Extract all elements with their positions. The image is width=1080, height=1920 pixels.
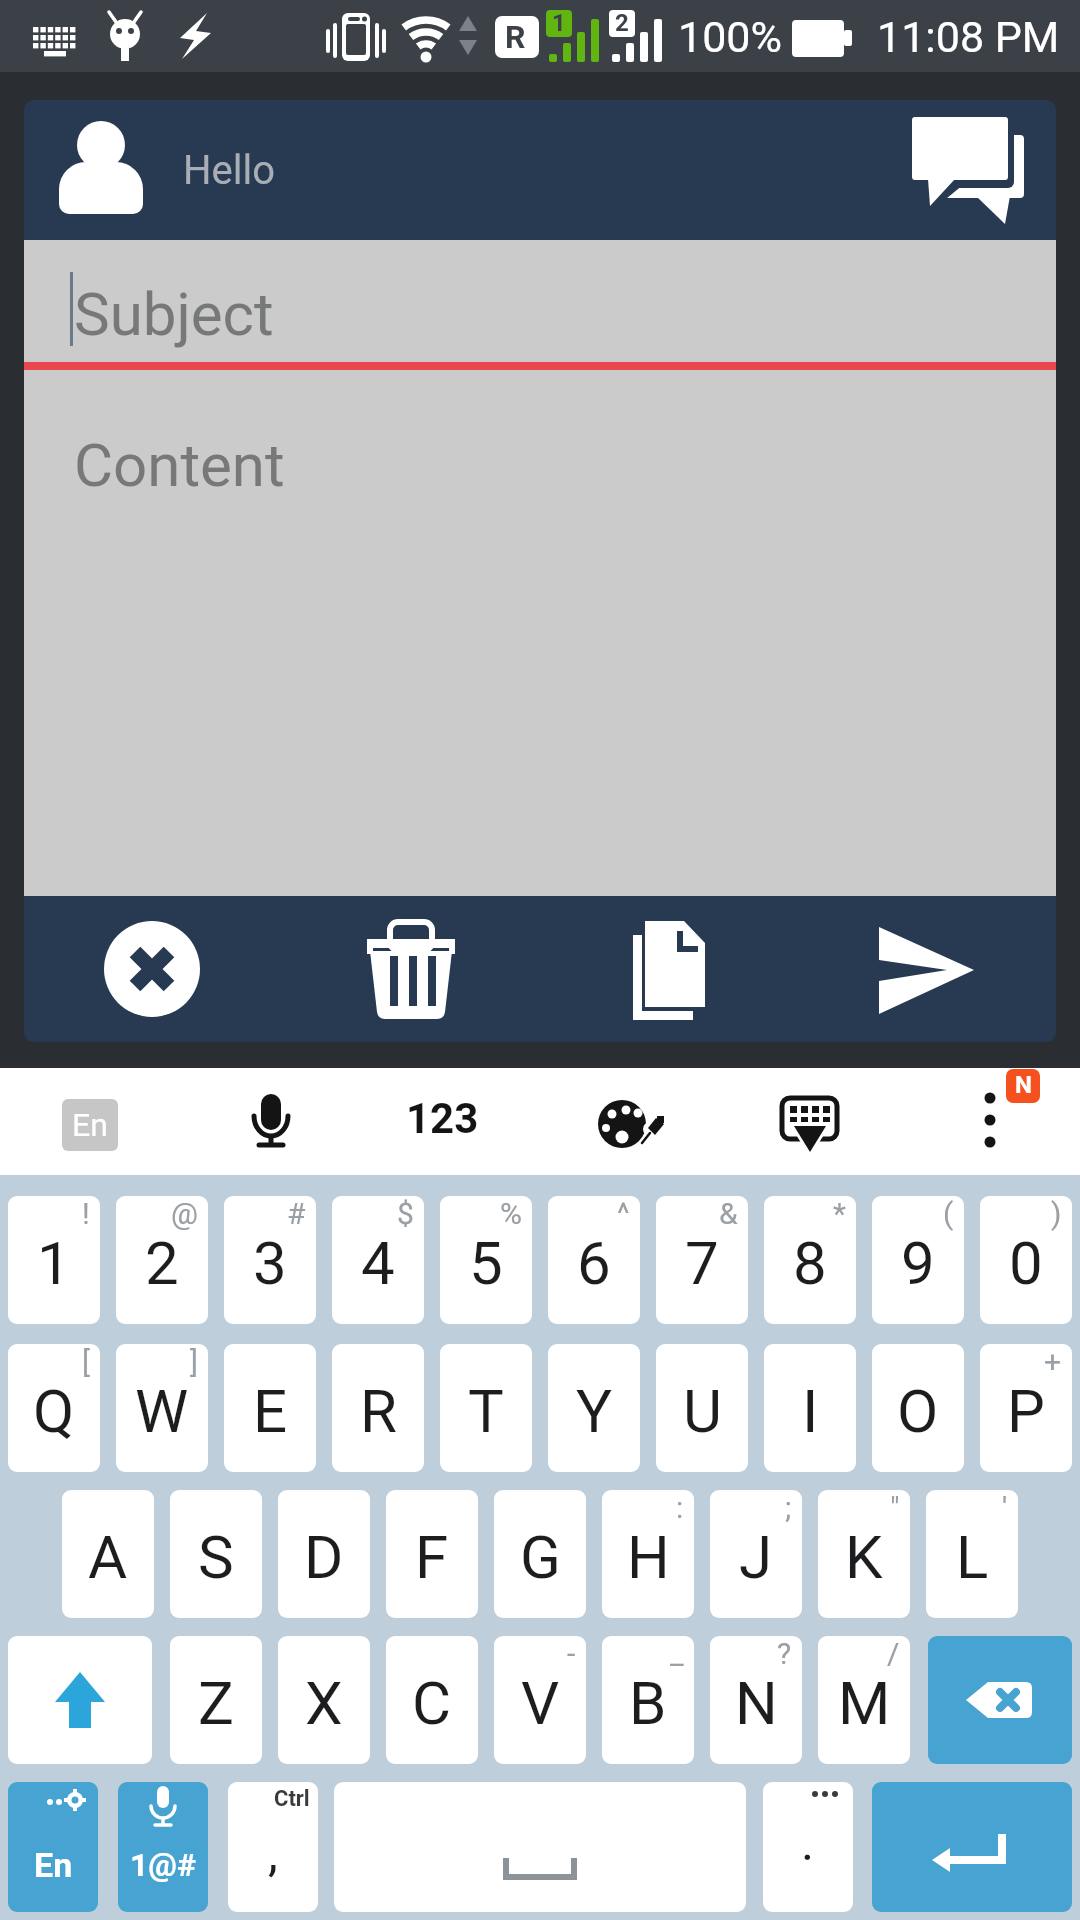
staticText: : [676, 1490, 684, 1525]
button[interactable] [598, 899, 738, 1039]
staticText: D [304, 1522, 344, 1592]
button[interactable] [928, 1636, 1072, 1764]
staticText: ^ [617, 1196, 630, 1231]
button[interactable] [855, 899, 995, 1039]
staticText: Q [33, 1376, 75, 1446]
button[interactable] [44, 110, 164, 230]
button[interactable]: L [926, 1490, 1018, 1618]
button[interactable] [892, 100, 1052, 240]
button[interactable]: X [278, 1636, 370, 1764]
staticText: O [897, 1376, 939, 1446]
button[interactable]: E [224, 1344, 316, 1472]
staticText: Subject [74, 279, 274, 349]
button[interactable] [950, 1078, 1040, 1168]
button[interactable] [341, 899, 481, 1039]
button[interactable]: 5 [440, 1196, 532, 1324]
staticText: ] [190, 1344, 198, 1379]
button[interactable] [82, 899, 222, 1039]
button[interactable]: D [278, 1490, 370, 1618]
button[interactable]: J [710, 1490, 802, 1618]
button[interactable] [768, 1078, 888, 1168]
staticText: X [305, 1668, 343, 1738]
button[interactable]: G [494, 1490, 586, 1618]
button[interactable]: Content [24, 370, 1056, 896]
button[interactable]: C [386, 1636, 478, 1764]
button[interactable]: I [764, 1344, 856, 1472]
staticText: 1 [37, 1228, 71, 1298]
staticText: F [415, 1522, 449, 1592]
staticText: K [845, 1522, 883, 1592]
button[interactable] [578, 1078, 668, 1168]
button[interactable]: , [228, 1782, 318, 1912]
button[interactable]: V [494, 1636, 586, 1764]
button[interactable]: U [656, 1344, 748, 1472]
staticText: ( [943, 1196, 954, 1231]
staticText: P [1007, 1376, 1045, 1446]
button[interactable]: A [62, 1490, 154, 1618]
button[interactable]: 7 [656, 1196, 748, 1324]
staticText: " [890, 1490, 900, 1525]
button[interactable]: T [440, 1344, 532, 1472]
staticText: * [833, 1196, 846, 1231]
staticText: N [1015, 1071, 1032, 1099]
staticText: 7 [685, 1228, 719, 1298]
staticText: V [521, 1668, 560, 1738]
button[interactable]: B [602, 1636, 694, 1764]
button[interactable]: O [872, 1344, 964, 1472]
staticText: @ [171, 1196, 198, 1231]
button[interactable] [390, 1078, 500, 1168]
staticText: J [739, 1522, 773, 1592]
button[interactable]: 4 [332, 1196, 424, 1324]
button[interactable] [8, 1636, 152, 1764]
button[interactable]: S [170, 1490, 262, 1618]
button[interactable]: En [62, 1099, 118, 1151]
staticText: 4 [361, 1228, 395, 1298]
button[interactable]: H [602, 1490, 694, 1618]
staticText: C [412, 1668, 452, 1738]
button[interactable]: M [818, 1636, 910, 1764]
staticText: % [500, 1196, 522, 1231]
button[interactable]: 0 [980, 1196, 1072, 1324]
button[interactable] [872, 1782, 1072, 1912]
button[interactable]: 6 [548, 1196, 640, 1324]
staticText: [ [82, 1344, 90, 1379]
button[interactable]: P [980, 1344, 1072, 1472]
button[interactable]: Y [548, 1344, 640, 1472]
button[interactable] [334, 1782, 746, 1912]
button[interactable]: Q [8, 1344, 100, 1472]
button[interactable]: N [710, 1636, 802, 1764]
button[interactable] [230, 1078, 315, 1168]
button[interactable]: Z [170, 1636, 262, 1764]
staticText: I [802, 1376, 819, 1446]
staticText: 9 [901, 1228, 935, 1298]
button[interactable]: R [332, 1344, 424, 1472]
staticText: 0 [1009, 1228, 1043, 1298]
staticText: 3 [253, 1228, 287, 1298]
button[interactable]: W [116, 1344, 208, 1472]
button[interactable]: Subject [24, 240, 1056, 362]
button[interactable]: 8 [764, 1196, 856, 1324]
staticText: ; [785, 1490, 792, 1525]
button[interactable]: En [8, 1782, 98, 1912]
staticText: 11:08 PM [877, 12, 1060, 62]
staticText: Y [576, 1376, 613, 1446]
staticText: G [520, 1522, 561, 1592]
staticText: 123 [406, 1094, 479, 1143]
staticText: A [88, 1522, 128, 1592]
staticText: Content [74, 430, 285, 500]
staticText: H [627, 1522, 670, 1592]
button[interactable]: 2 [116, 1196, 208, 1324]
button[interactable]: 9 [872, 1196, 964, 1324]
button[interactable]: 1@# [118, 1782, 208, 1912]
button[interactable]: F [386, 1490, 478, 1618]
button[interactable]: K [818, 1490, 910, 1618]
button[interactable]: . [763, 1782, 853, 1912]
staticText: # [287, 1196, 306, 1231]
button[interactable]: 3 [224, 1196, 316, 1324]
staticText: 2 [615, 9, 629, 37]
staticText: ' [1002, 1490, 1008, 1525]
staticText: , [268, 1824, 278, 1883]
staticText: M [838, 1668, 891, 1738]
button[interactable]: 1 [8, 1196, 100, 1324]
staticText: Z [198, 1668, 234, 1738]
